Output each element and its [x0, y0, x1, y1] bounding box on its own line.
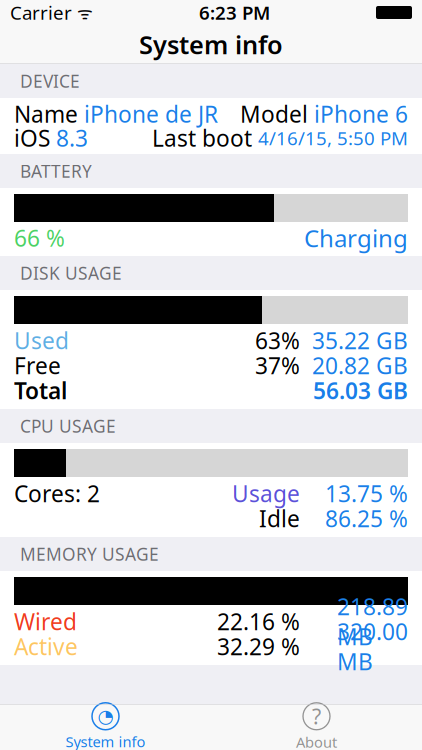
staticText: 63%: [255, 325, 300, 355]
staticText: BATTERY: [20, 159, 92, 182]
staticText: iPhone de JR: [84, 99, 218, 129]
staticText: Used: [14, 325, 69, 355]
staticText: 20.82 GB: [312, 350, 408, 380]
staticText: Carrier: [10, 0, 72, 25]
staticText: 35.22 GB: [312, 325, 408, 355]
staticText: 32.29 %: [217, 631, 300, 661]
staticText: iPhone 6: [314, 99, 408, 129]
staticText: Last boot: [152, 123, 258, 153]
staticText: System info: [139, 28, 283, 61]
staticText: DISK USAGE: [20, 261, 122, 284]
staticText: 4/16/15, 5:50 PM: [258, 126, 408, 150]
staticText: 66 %: [14, 223, 65, 253]
staticText: About: [296, 732, 337, 750]
staticText: MEMORY USAGE: [20, 542, 159, 565]
staticText: ᯤ: [72, 1, 93, 24]
staticText: 8.3: [56, 123, 88, 153]
staticText: Idle: [259, 503, 300, 533]
staticText: Wired: [14, 606, 77, 636]
button[interactable]: ◔: [0, 704, 211, 750]
staticText: 13.75 %: [325, 478, 408, 508]
button[interactable]: ?: [211, 704, 422, 750]
staticText: 320.00 MB: [337, 616, 408, 677]
staticText: 218.89 MB: [337, 591, 408, 652]
staticText: ?: [312, 702, 321, 730]
staticText: Usage: [232, 478, 300, 508]
staticText: 22.16 %: [217, 606, 300, 636]
staticText: 86.25 %: [325, 503, 408, 533]
staticText: DEVICE: [20, 69, 80, 92]
staticText: 56.03 GB: [313, 375, 408, 405]
staticText: Total: [14, 375, 67, 405]
staticText: iOS: [14, 123, 56, 153]
staticText: Charging: [304, 222, 408, 254]
staticText: System info: [65, 732, 145, 750]
staticText: ◔: [97, 706, 113, 727]
staticText: Cores: 2: [14, 478, 100, 508]
staticText: 37%: [255, 350, 300, 380]
staticText: Name: [14, 99, 84, 129]
staticText: Active: [14, 631, 78, 661]
staticText: Free: [14, 350, 61, 380]
staticText: Model: [240, 99, 314, 129]
staticText: 6:23 PM: [199, 0, 270, 25]
staticText: CPU USAGE: [20, 414, 116, 437]
